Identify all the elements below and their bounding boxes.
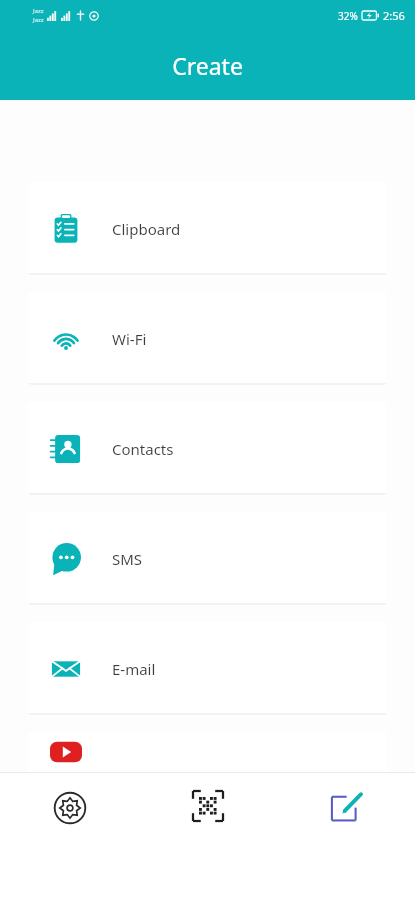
button[interactable]: Scan QR code — [139, 773, 277, 900]
staticText: 32% — [338, 9, 358, 23]
staticText: Wi-Fi — [112, 329, 147, 349]
staticText: Jazz — [33, 7, 44, 15]
button[interactable]: Create note — [277, 773, 415, 900]
button[interactable]: Clipboard — [28, 182, 387, 275]
staticText: E-mail — [112, 659, 156, 679]
staticText: Contacts — [112, 439, 174, 459]
staticText: Create — [172, 50, 243, 81]
button[interactable]: Settings — [0, 773, 139, 900]
button[interactable] — [28, 732, 387, 772]
button[interactable]: Contacts — [28, 402, 387, 495]
staticText: Clipboard — [112, 219, 181, 239]
staticText: SMS — [112, 549, 143, 569]
button[interactable]: E-mail — [28, 622, 387, 715]
button[interactable]: SMS — [28, 512, 387, 605]
staticText: 2:56 — [383, 8, 405, 23]
button[interactable]: Wi-Fi — [28, 292, 387, 385]
staticText: Jazz — [33, 16, 44, 24]
